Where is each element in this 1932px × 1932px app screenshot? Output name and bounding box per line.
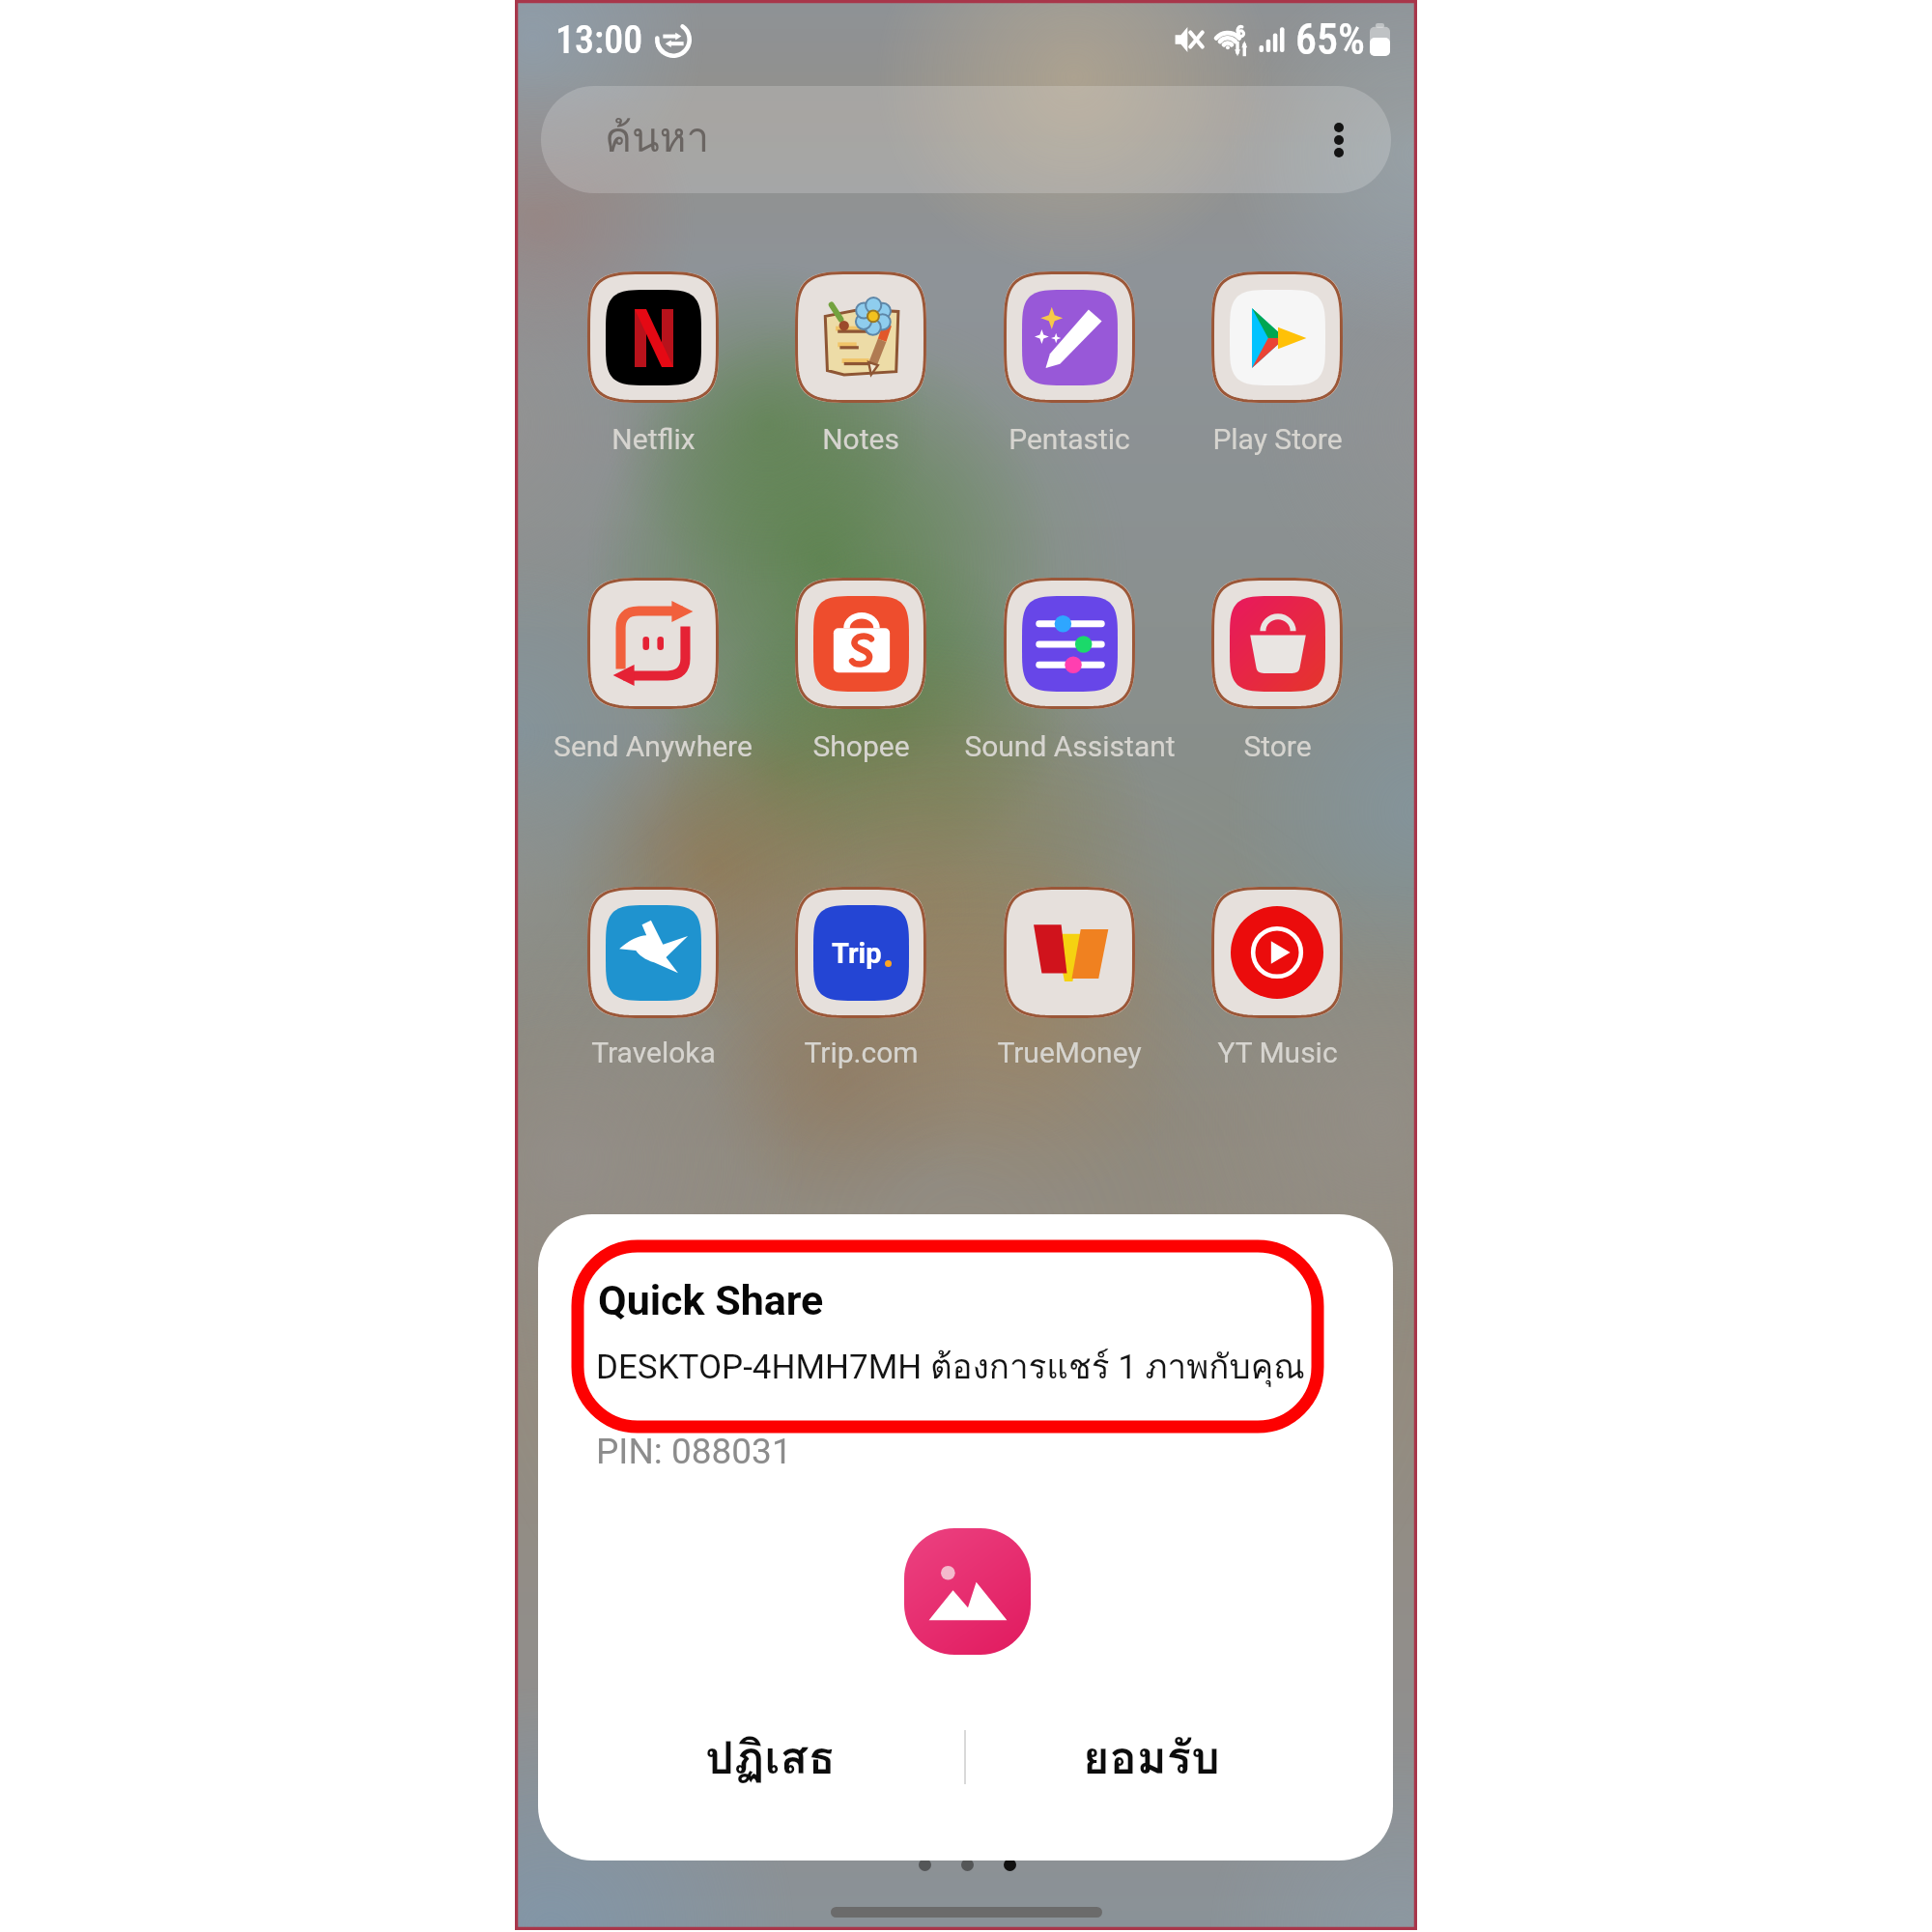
button[interactable] bbox=[552, 256, 754, 464]
button[interactable] bbox=[552, 562, 754, 770]
staticText: ปฏิเสธ bbox=[705, 1721, 836, 1794]
staticText: PIN: 088031 bbox=[596, 1431, 792, 1472]
staticText: Send Anywhere bbox=[554, 729, 753, 763]
staticText: ยอมรับ bbox=[1083, 1721, 1220, 1794]
staticText: Netflix bbox=[611, 422, 696, 456]
staticText: DESKTOP-4HMH7MH ต้องการแชร์ 1 ภาพกับคุณ bbox=[596, 1340, 1305, 1394]
button[interactable]: ยอมรับ bbox=[939, 1699, 1364, 1815]
staticText: Sound Assistant bbox=[964, 729, 1176, 763]
button[interactable]: ปฏิเสธ bbox=[557, 1699, 982, 1815]
staticText: YT Music bbox=[1217, 1036, 1338, 1069]
staticText: 13:00 bbox=[555, 17, 643, 63]
button[interactable] bbox=[1176, 256, 1378, 464]
staticText: Play Store bbox=[1212, 422, 1343, 456]
button[interactable]: More options bbox=[1308, 109, 1370, 171]
staticText: TrueMoney bbox=[997, 1036, 1142, 1069]
staticText: Shopee bbox=[812, 729, 910, 763]
button[interactable] bbox=[759, 256, 962, 464]
staticText: Pentastic bbox=[1009, 422, 1130, 456]
staticText: Trip.com bbox=[804, 1036, 919, 1069]
button[interactable] bbox=[968, 562, 1171, 770]
button[interactable] bbox=[759, 562, 962, 770]
staticText: Quick Share bbox=[598, 1276, 824, 1324]
button[interactable] bbox=[552, 871, 754, 1079]
staticText: Notes bbox=[822, 422, 899, 456]
staticText: Trip bbox=[832, 937, 882, 970]
staticText: Traveloka bbox=[591, 1036, 716, 1069]
staticText: ค้นหา bbox=[605, 105, 710, 170]
staticText: Store bbox=[1243, 729, 1312, 763]
staticText: 65% bbox=[1295, 14, 1365, 65]
button[interactable] bbox=[1176, 562, 1378, 770]
button[interactable]: Trip bbox=[759, 871, 962, 1079]
button[interactable] bbox=[968, 256, 1171, 464]
button[interactable] bbox=[1176, 871, 1378, 1079]
button[interactable] bbox=[968, 871, 1171, 1079]
button[interactable]: ค้นหา bbox=[541, 86, 1391, 193]
